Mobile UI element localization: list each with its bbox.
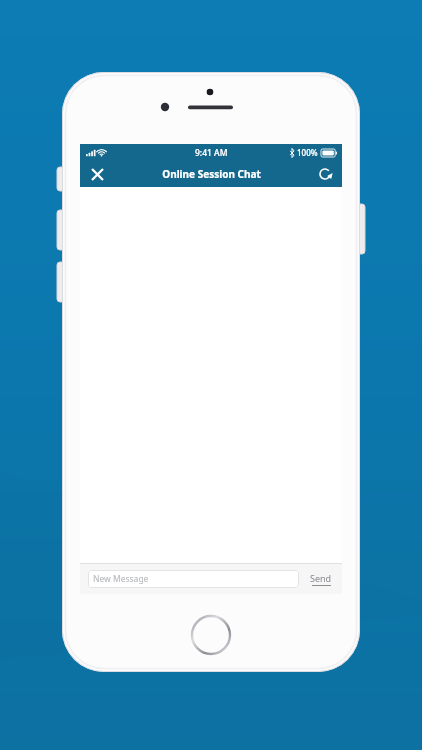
staticText: Online Session Chat [162, 167, 261, 181]
button[interactable]: Refresh [314, 163, 336, 185]
staticText: New Message [93, 573, 149, 585]
button[interactable]: Close [86, 163, 108, 185]
staticText: Send [310, 572, 332, 584]
staticText: 9:41 AM [195, 147, 228, 159]
staticText: 100% [297, 147, 318, 158]
button[interactable]: Send [308, 569, 334, 589]
button[interactable]: New Message [88, 570, 299, 588]
